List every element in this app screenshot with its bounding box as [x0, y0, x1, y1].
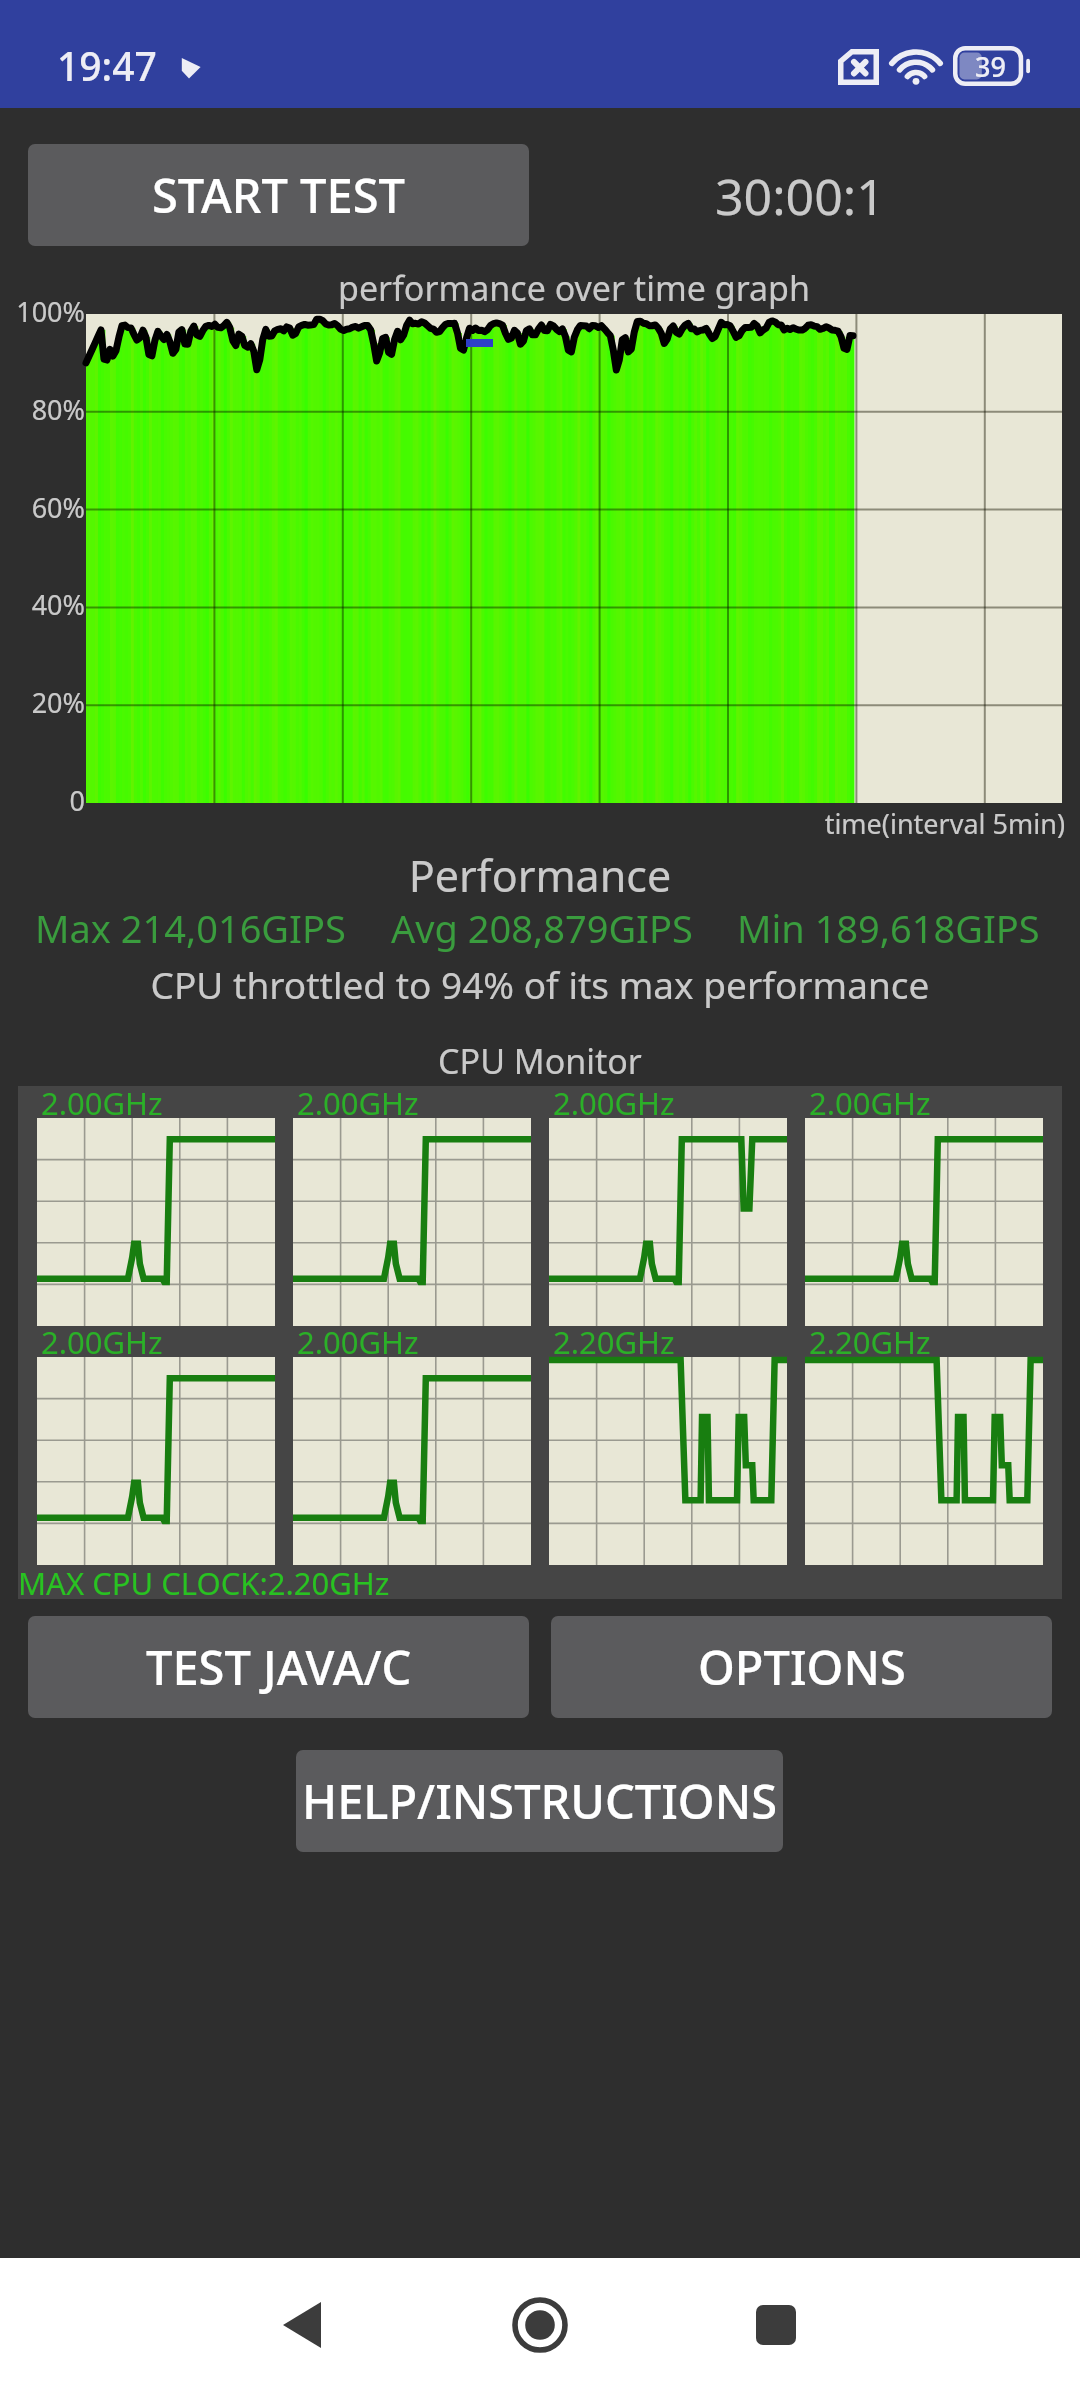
- staticText: 2.00GHz: [809, 1082, 931, 1124]
- button[interactable]: Back: [242, 2265, 362, 2385]
- staticText: 39: [975, 48, 1006, 85]
- staticText: 100%: [0, 293, 85, 330]
- button[interactable]: Home: [480, 2265, 600, 2385]
- staticText: Min 189,618GIPS: [737, 902, 1040, 954]
- staticText: CPU Monitor: [0, 1038, 1080, 1084]
- staticText: 80%: [0, 391, 85, 428]
- button[interactable]: START TEST: [28, 144, 529, 246]
- staticText: 0: [0, 782, 85, 819]
- staticText: Avg 208,879GIPS: [391, 902, 693, 954]
- staticText: 30:00:1: [715, 162, 885, 230]
- staticText: Performance: [0, 846, 1080, 905]
- staticText: 20%: [0, 684, 85, 721]
- staticText: 2.20GHz: [553, 1321, 675, 1363]
- staticText: 2.00GHz: [297, 1321, 419, 1363]
- button[interactable]: OPTIONS: [551, 1616, 1052, 1718]
- staticText: 2.00GHz: [553, 1082, 675, 1124]
- staticText: OPTIONS: [698, 1635, 906, 1699]
- staticText: START TEST: [152, 163, 405, 227]
- staticText: 2.00GHz: [41, 1321, 163, 1363]
- staticText: performance over time graph: [338, 265, 810, 311]
- staticText: 2.00GHz: [41, 1082, 163, 1124]
- button[interactable]: TEST JAVA/C: [28, 1616, 529, 1718]
- staticText: MAX CPU CLOCK:2.20GHz: [18, 1562, 390, 1604]
- staticText: 2.00GHz: [297, 1082, 419, 1124]
- staticText: 60%: [0, 489, 85, 526]
- staticText: 19:47: [57, 39, 157, 92]
- staticText: 2.20GHz: [809, 1321, 931, 1363]
- staticText: HELP/INSTRUCTIONS: [302, 1769, 778, 1833]
- staticText: time(interval 5min): [0, 805, 1065, 842]
- staticText: CPU throttled to 94% of its max performa…: [0, 959, 1080, 1009]
- staticText: TEST JAVA/C: [146, 1635, 412, 1699]
- staticText: 40%: [0, 586, 85, 623]
- button[interactable]: HELP/INSTRUCTIONS: [296, 1750, 783, 1852]
- button[interactable]: Recents: [716, 2265, 836, 2385]
- staticText: Max 214,016GIPS: [35, 902, 346, 954]
